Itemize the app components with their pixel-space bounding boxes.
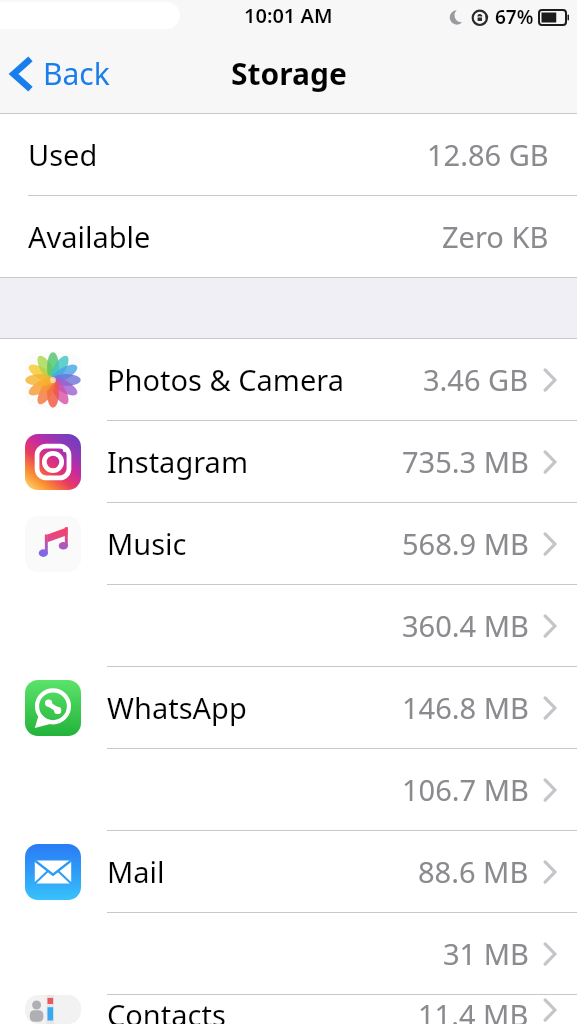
button[interactable]: 360.4 MB xyxy=(0,585,577,666)
staticText: 31 MB xyxy=(443,934,529,973)
staticText: 360.4 MB xyxy=(402,606,529,645)
staticText: Storage xyxy=(231,53,347,94)
staticText: 10:01 AM xyxy=(244,2,333,29)
staticText: 3.46 GB xyxy=(423,360,529,399)
staticText: Contacts xyxy=(107,995,226,1024)
staticText: 88.6 MB xyxy=(418,852,529,891)
staticText: Back xyxy=(43,53,110,94)
button[interactable]: Mail xyxy=(0,831,577,912)
button[interactable]: WhatsApp xyxy=(0,667,577,748)
button[interactable]: Music xyxy=(0,503,577,584)
staticText: Instagram xyxy=(107,442,248,481)
button[interactable]: Contacts xyxy=(0,995,577,1024)
staticText: 67% xyxy=(495,4,534,30)
button[interactable]: Available xyxy=(0,196,577,277)
button[interactable]: Photos & Camera xyxy=(0,339,577,420)
staticText: 735.3 MB xyxy=(402,442,529,481)
staticText: Available xyxy=(28,217,151,256)
staticText: 146.8 MB xyxy=(402,688,529,727)
button[interactable]: Back xyxy=(0,43,124,104)
staticText: 12.86 GB xyxy=(427,135,549,174)
staticText: 568.9 MB xyxy=(402,524,529,563)
button[interactable]: Used xyxy=(0,114,577,195)
button[interactable]: 31 MB xyxy=(0,913,577,994)
staticText: Photos & Camera xyxy=(107,360,344,399)
button[interactable]: 106.7 MB xyxy=(0,749,577,830)
staticText: Music xyxy=(107,524,187,563)
staticText: Used xyxy=(28,135,98,174)
staticText: Mail xyxy=(107,852,165,891)
button[interactable]: Instagram xyxy=(0,421,577,502)
staticText: WhatsApp xyxy=(107,688,247,727)
staticText: 11.4 MB xyxy=(418,995,529,1024)
staticText: Zero KB xyxy=(442,217,549,256)
staticText: 106.7 MB xyxy=(402,770,529,809)
